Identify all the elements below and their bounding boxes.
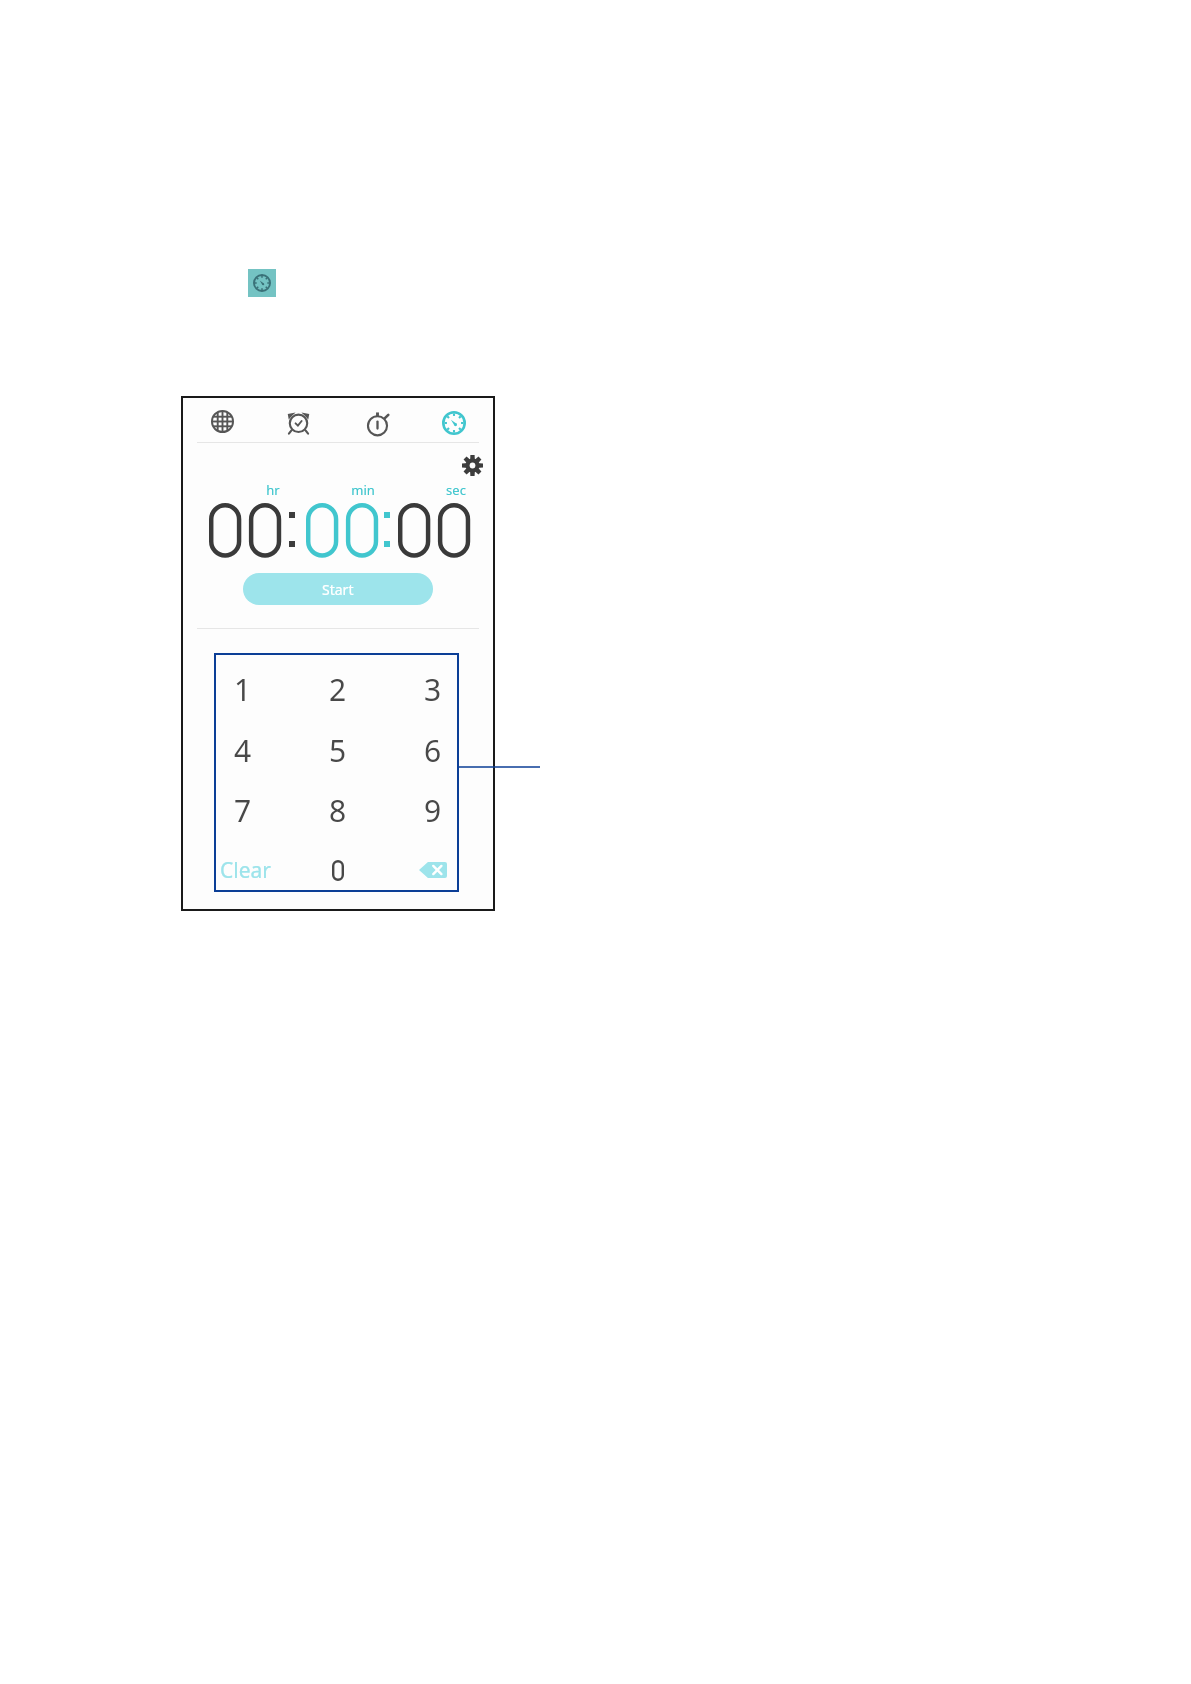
button[interactable]: 6 xyxy=(403,729,463,771)
button[interactable]: Stopwatch xyxy=(339,397,415,442)
button[interactable]: 4 xyxy=(213,729,273,771)
staticText: 1 xyxy=(234,669,252,710)
button[interactable]: Backspace xyxy=(411,852,455,888)
button[interactable]: 7 xyxy=(213,789,273,831)
button[interactable]: Start xyxy=(243,573,433,605)
button[interactable]: Timer xyxy=(416,397,492,442)
button[interactable]: 8 xyxy=(308,789,368,831)
button[interactable] xyxy=(316,852,360,888)
staticText: 2 xyxy=(329,669,347,710)
staticText: Start xyxy=(322,580,354,599)
button[interactable]: 1 xyxy=(213,668,273,710)
staticText: 3 xyxy=(424,669,442,710)
button[interactable]: World clock xyxy=(184,397,260,442)
staticText: 8 xyxy=(329,790,347,831)
button[interactable]: 9 xyxy=(403,789,463,831)
staticText: 6 xyxy=(424,730,442,771)
staticText: min xyxy=(351,481,375,499)
button[interactable]: Timer app icon xyxy=(248,269,276,297)
button[interactable]: 5 xyxy=(308,729,368,771)
button[interactable]: Clear xyxy=(220,852,276,888)
staticText: sec xyxy=(446,481,466,499)
button[interactable]: 2 xyxy=(308,668,368,710)
staticText: 4 xyxy=(234,730,252,771)
button[interactable]: Settings xyxy=(457,450,487,480)
staticText: 9 xyxy=(424,790,442,831)
button[interactable]: 3 xyxy=(403,668,463,710)
staticText: 5 xyxy=(329,730,347,771)
staticText: hr xyxy=(266,481,280,499)
staticText: 7 xyxy=(234,790,252,831)
staticText: Clear xyxy=(220,856,271,885)
button[interactable]: Alarm xyxy=(261,397,337,442)
